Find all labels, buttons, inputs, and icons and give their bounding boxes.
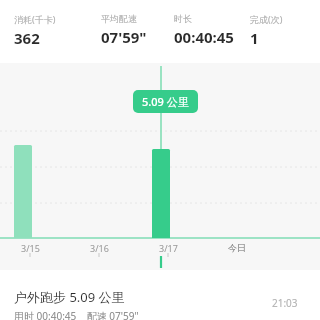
staticText: 今日: [228, 242, 246, 253]
staticText: 完成(次): [250, 13, 283, 25]
staticText: 时长: [174, 13, 192, 24]
staticText: 362: [14, 28, 40, 48]
button[interactable]: 5.09 公里: [0, 63, 320, 270]
staticText: 00:40:45: [174, 27, 234, 47]
button[interactable]: 户外跑步 5.09 公里: [0, 270, 320, 320]
staticText: 3/17: [159, 242, 178, 254]
staticText: 用时 00:40:45 配速 07'59": [14, 309, 139, 320]
button[interactable]: 5.09 公里: [133, 90, 198, 113]
staticText: 5.09 公里: [142, 94, 189, 109]
staticText: 平均配速: [101, 13, 137, 24]
staticText: 1: [250, 28, 259, 48]
staticText: 07'59": [101, 27, 147, 47]
staticText: 21:03: [272, 296, 298, 310]
staticText: 3/16: [90, 242, 109, 254]
staticText: 3/15: [21, 242, 40, 254]
staticText: 消耗(千卡): [14, 13, 56, 25]
staticText: 户外跑步 5.09 公里: [14, 288, 125, 306]
